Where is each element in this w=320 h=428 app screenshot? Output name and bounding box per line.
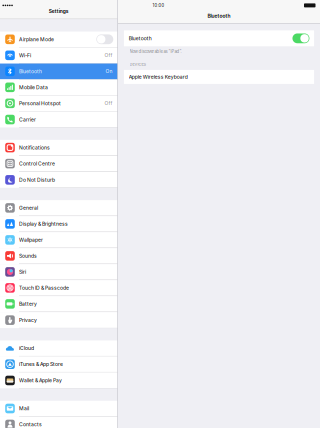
button[interactable]: Wallpaper — [0, 232, 117, 248]
staticText: Display & Brightness — [19, 221, 68, 227]
staticText: Sounds — [19, 253, 37, 259]
staticText: iTunes & App Store — [19, 361, 63, 367]
button[interactable]: Bluetooth — [0, 63, 117, 79]
button[interactable]: Personal Hotspot — [0, 95, 117, 111]
staticText: Touch ID & Passcode — [19, 285, 69, 291]
button[interactable]: Privacy — [0, 312, 117, 328]
staticText: Carrier — [19, 116, 36, 123]
staticText: Battery — [19, 301, 37, 307]
staticText: DEVICES — [130, 62, 147, 67]
staticText: Mail — [19, 405, 29, 411]
button[interactable]: Carrier — [0, 111, 117, 127]
staticText: iCloud — [19, 345, 34, 351]
staticText: Wallpaper — [19, 237, 43, 243]
button[interactable]: Mobile Data — [0, 79, 117, 95]
button[interactable]: Wallet & Apple Pay — [0, 372, 117, 388]
button[interactable]: Contacts — [0, 417, 117, 428]
staticText: Do Not Disturb — [19, 177, 55, 183]
staticText: Bluetooth — [129, 35, 152, 41]
staticText: Control Centre — [19, 160, 55, 167]
staticText: Settings — [49, 8, 69, 14]
button[interactable]: Touch ID & Passcode — [0, 280, 117, 296]
staticText: Mobile Data — [19, 84, 48, 90]
button[interactable]: Battery — [0, 296, 117, 312]
button[interactable]: Wi-Fi — [0, 47, 117, 63]
staticText: Off — [104, 100, 112, 106]
staticText: Apple Wireless Keyboard — [129, 74, 188, 80]
staticText: Wi-Fi — [19, 52, 31, 58]
button[interactable]: Airplane Mode — [0, 31, 117, 47]
staticText: Off — [104, 52, 112, 58]
button[interactable]: General — [0, 200, 117, 216]
staticText: Airplane Mode — [19, 36, 54, 42]
button[interactable]: Bluetooth — [124, 30, 314, 46]
button[interactable]: Do Not Disturb — [0, 172, 117, 188]
button[interactable]: Sounds — [0, 248, 117, 264]
staticText: Personal Hotspot — [19, 100, 61, 106]
staticText: Notifications — [19, 144, 50, 151]
button[interactable]: Mail — [0, 401, 117, 417]
button[interactable]: Display & Brightness — [0, 216, 117, 232]
staticText: Bluetooth — [19, 68, 42, 74]
button[interactable]: Apple Wireless Keyboard — [124, 70, 314, 84]
button[interactable]: iTunes & App Store — [0, 356, 117, 372]
staticText: 10:00 — [152, 3, 164, 8]
staticText: Privacy — [19, 317, 37, 323]
button[interactable]: Control Centre — [0, 156, 117, 172]
staticText: Now discoverable as “iPad”. — [130, 49, 182, 54]
staticText: On — [105, 68, 112, 74]
staticText: General — [19, 205, 38, 211]
button[interactable]: iCloud — [0, 340, 117, 356]
staticText: Siri — [19, 269, 26, 275]
staticText: Bluetooth — [207, 13, 230, 19]
staticText: Contacts — [19, 421, 42, 427]
button[interactable]: Notifications — [0, 140, 117, 156]
staticText: Wallet & Apple Pay — [19, 377, 62, 383]
button[interactable]: Siri — [0, 264, 117, 280]
